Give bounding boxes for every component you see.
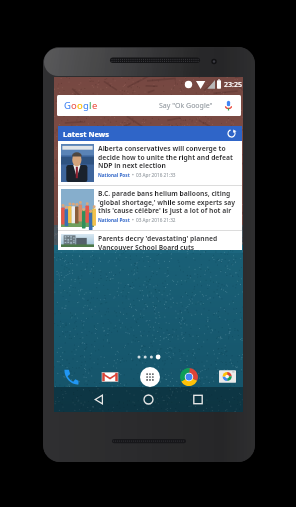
- staticText: 03 Apr 2016 21:32: [136, 217, 176, 223]
- staticText: National Post: [98, 172, 130, 178]
- button[interactable]: All apps: [139, 366, 160, 387]
- staticText: •: [132, 172, 134, 178]
- button[interactable]: Chrome: [178, 366, 199, 387]
- button[interactable]: G: [57, 95, 241, 116]
- button[interactable]: Latest News: [63, 126, 237, 141]
- button[interactable]: Parents decry 'devastating' planned Vanc…: [61, 234, 239, 250]
- staticText: G: [64, 99, 71, 112]
- staticText: National Post: [98, 217, 130, 223]
- staticText: Latest News: [63, 129, 109, 139]
- staticText: 03 Apr 2016 21:33: [136, 172, 176, 178]
- staticText: g: [83, 99, 89, 112]
- staticText: o: [71, 99, 77, 112]
- button[interactable]: Alberta conservatives will converge to d…: [61, 144, 239, 185]
- staticText: Say "Ok Google": [159, 101, 213, 111]
- button[interactable]: B.C. parade bans helium balloons, citing…: [61, 189, 239, 230]
- staticText: l: [89, 99, 92, 112]
- button[interactable]: Phone: [60, 366, 81, 387]
- staticText: Parents decry 'devastating' planned Vanc…: [98, 234, 239, 250]
- button[interactable]: Voice search: [222, 99, 235, 112]
- staticText: o: [77, 99, 83, 112]
- staticText: Alberta conservatives will converge to d…: [98, 144, 239, 170]
- button[interactable]: Camera: [217, 366, 238, 387]
- button[interactable]: Gmail: [99, 366, 120, 387]
- button[interactable]: Refresh: [226, 128, 237, 139]
- staticText: •: [132, 217, 134, 223]
- staticText: e: [92, 99, 98, 112]
- staticText: B.C. parade bans helium balloons, citing…: [98, 189, 239, 215]
- staticText: 23:25: [224, 80, 242, 90]
